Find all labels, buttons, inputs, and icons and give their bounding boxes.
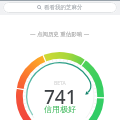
staticText: 看看我的芝麻分 (44, 4, 83, 11)
staticText: 741 (44, 84, 77, 110)
staticText: 信用极好 (44, 104, 76, 114)
button[interactable]: — 点阅历史 重估影响 — (30, 30, 90, 38)
button[interactable]: 看看我的芝麻分 (3, 2, 117, 13)
staticText: BETA (54, 80, 66, 87)
staticText: — 点阅历史 重估影响 — (30, 30, 90, 38)
